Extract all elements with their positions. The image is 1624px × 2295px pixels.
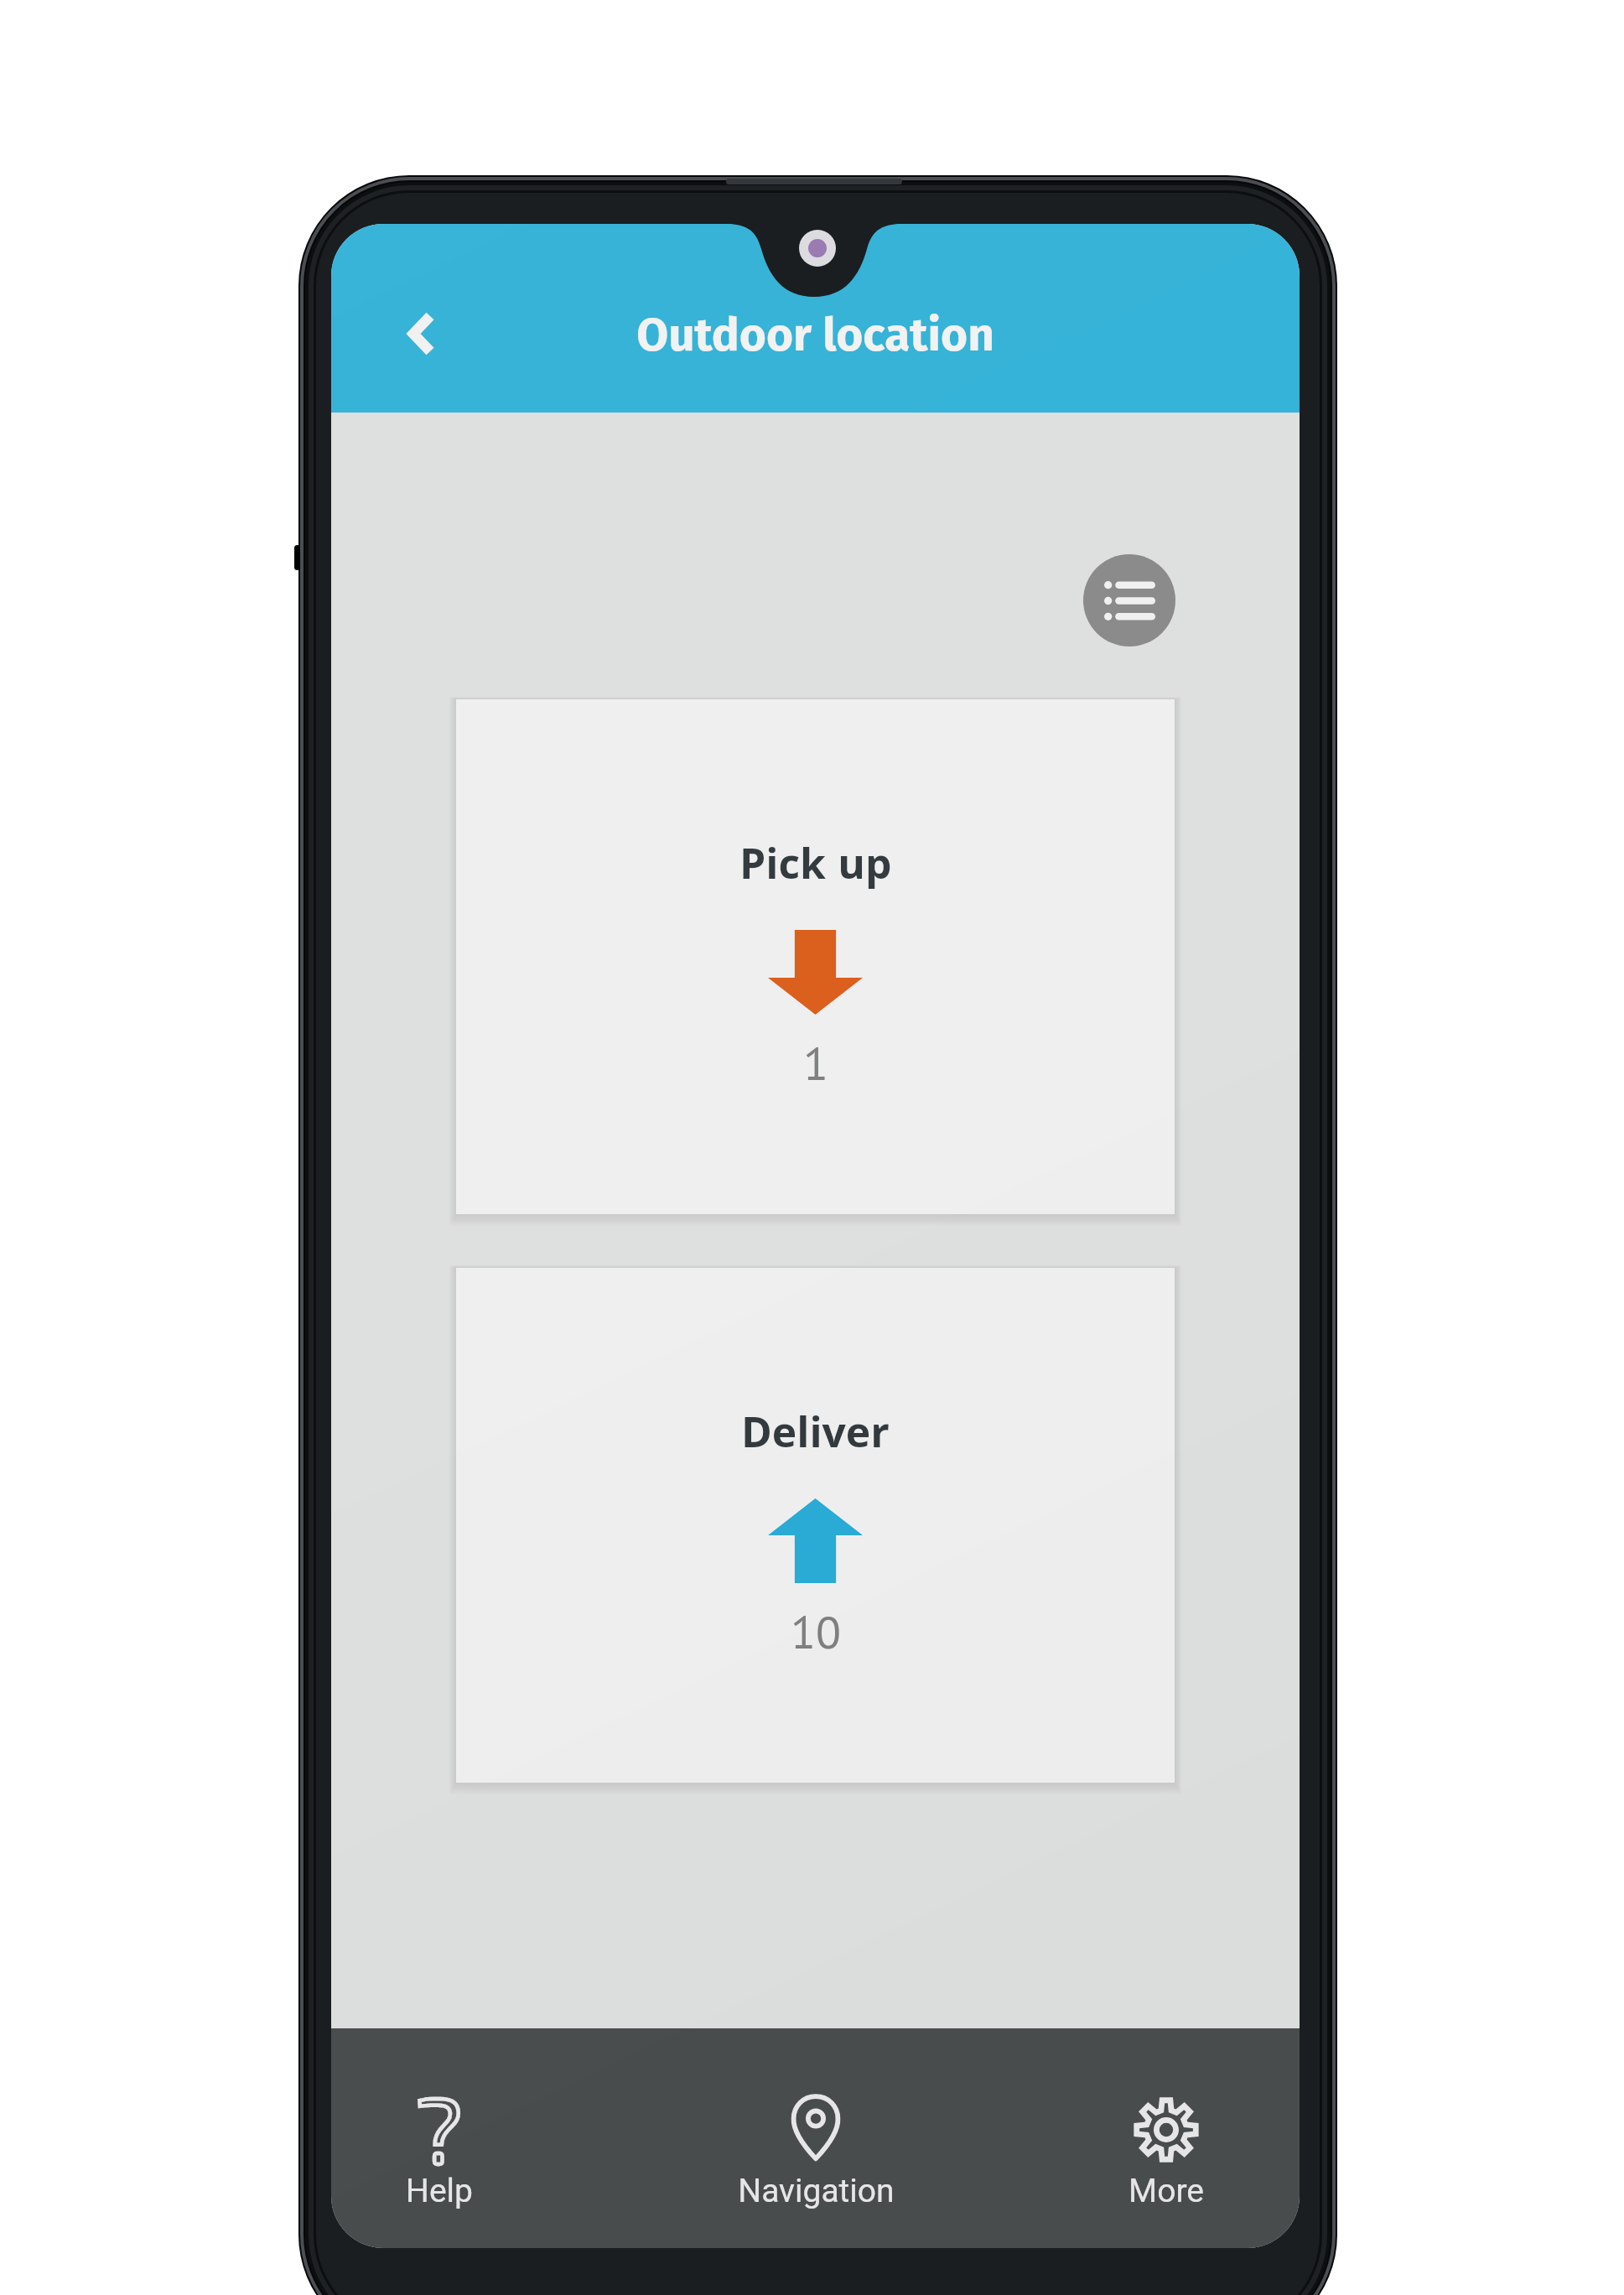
staticText: 1 bbox=[803, 1033, 828, 1093]
staticText: 10 bbox=[791, 1602, 841, 1661]
button[interactable]: Navigation bbox=[682, 2028, 950, 2248]
button[interactable]: More bbox=[1032, 2028, 1300, 2248]
button[interactable]: Show list bbox=[1083, 554, 1175, 646]
staticText: Navigation bbox=[738, 2172, 895, 2210]
staticText: Help bbox=[406, 2172, 473, 2210]
button[interactable]: Back bbox=[392, 295, 451, 372]
staticText: More bbox=[1128, 2172, 1204, 2210]
staticText: Outdoor location bbox=[636, 308, 994, 363]
button[interactable]: ? bbox=[331, 2028, 573, 2248]
staticText: Deliver bbox=[741, 1403, 890, 1475]
staticText: ? bbox=[416, 2072, 463, 2183]
button[interactable]: Deliver bbox=[456, 1268, 1175, 1783]
staticText: Pick up bbox=[739, 834, 892, 906]
button[interactable]: Pick up bbox=[456, 699, 1175, 1214]
